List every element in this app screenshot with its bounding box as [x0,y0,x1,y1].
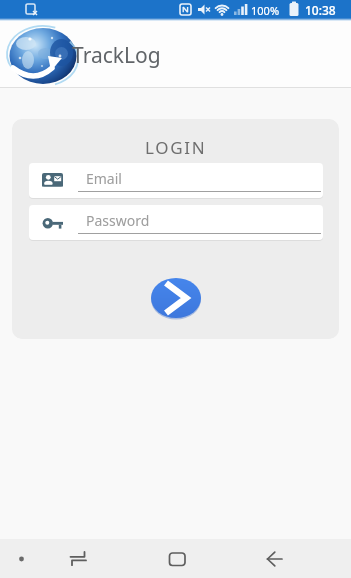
button[interactable]: Email [29,163,323,198]
staticText: Password [86,211,150,230]
button[interactable] [87,539,175,578]
staticText: LOGIN [145,136,207,159]
button[interactable] [175,539,263,578]
staticText: Email [86,169,122,188]
button[interactable]: Password [29,205,323,240]
button[interactable] [150,277,202,319]
button[interactable] [263,539,351,578]
staticText: 100% [251,3,280,18]
button[interactable] [0,539,87,578]
staticText: TrackLog [72,41,161,70]
staticText: 10:38 [305,2,336,18]
